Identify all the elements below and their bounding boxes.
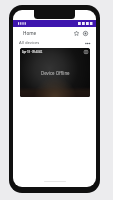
button[interactable]: More options <box>83 39 91 47</box>
button[interactable]: Account <box>81 29 89 37</box>
button[interactable]: Favourites <box>72 29 80 37</box>
staticText: Device Offline <box>41 70 70 76</box>
staticText: All devices <box>19 40 40 46</box>
staticText: Apr 18 · 09:40:02 <box>22 50 43 54</box>
staticText: Home <box>23 30 37 36</box>
button[interactable]: Camera <box>84 50 88 54</box>
button[interactable]: Apr 18 · 09:40:02 <box>20 48 90 97</box>
